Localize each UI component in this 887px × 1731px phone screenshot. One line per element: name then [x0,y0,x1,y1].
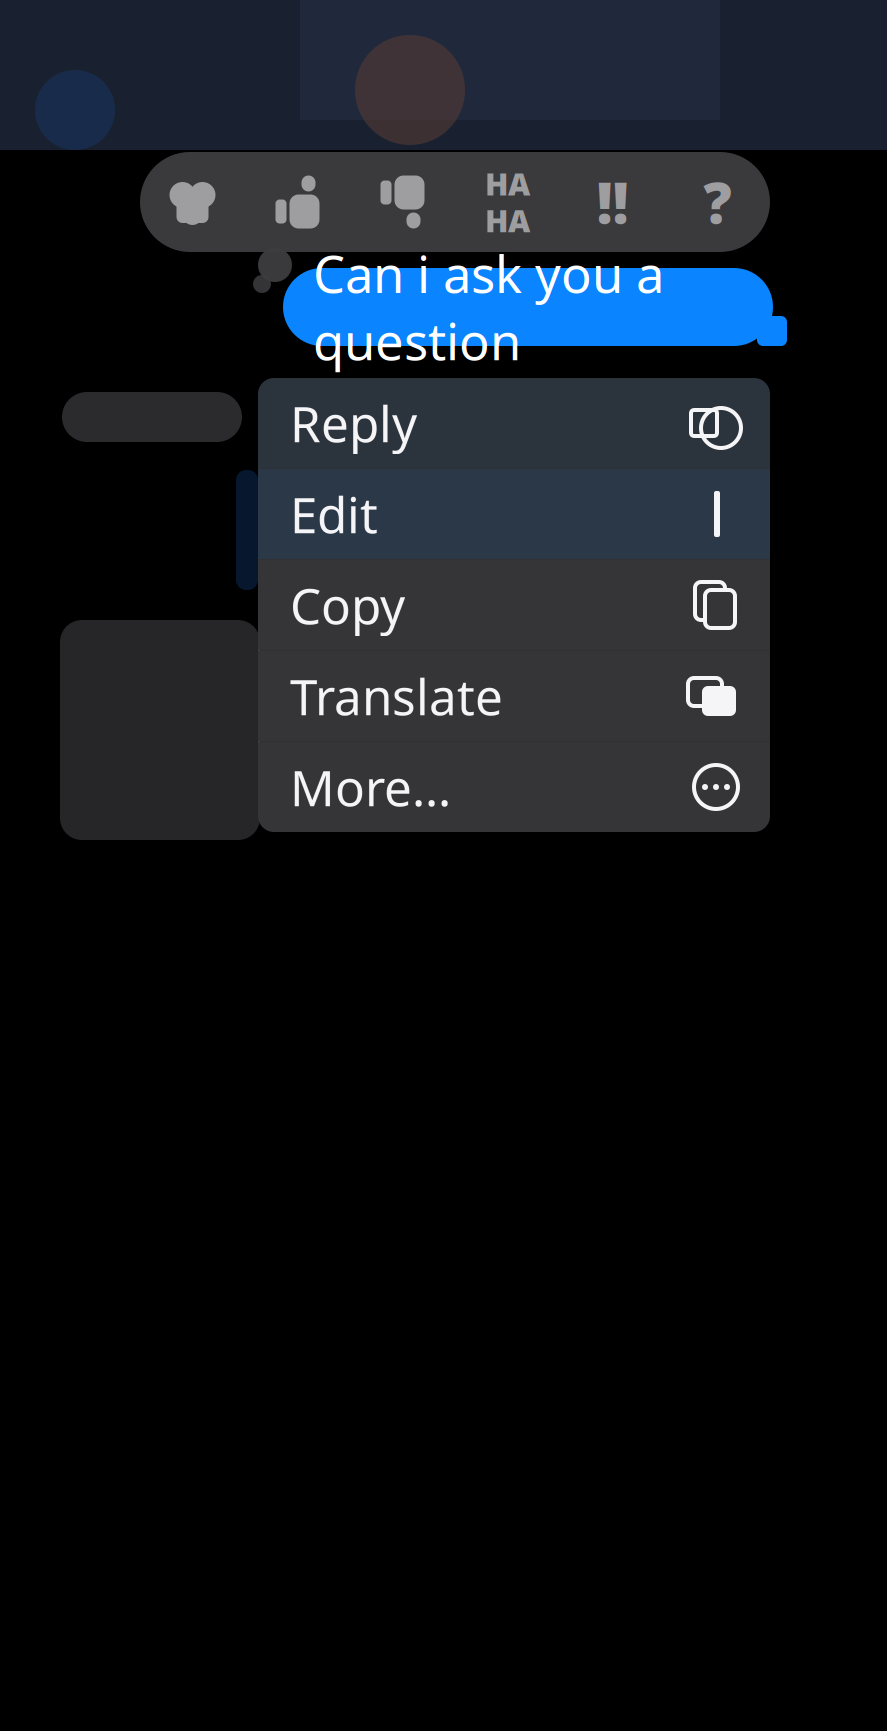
button[interactable]: Reply [258,378,770,468]
staticText: !! [596,165,628,239]
button[interactable]: More... [258,742,770,832]
staticText: Translate [290,663,503,729]
staticText: HA [485,200,530,241]
button[interactable]: Edit [258,469,770,559]
button[interactable]: Love [140,152,245,252]
button[interactable]: Like [245,152,350,252]
button[interactable]: Dislike [350,152,455,252]
staticText: HA [485,163,530,204]
staticText: ? [703,165,731,239]
button[interactable]: Copy [258,560,770,650]
staticText: Reply [290,390,417,456]
button[interactable]: Haha [455,152,560,252]
staticText: Edit [290,481,378,547]
button[interactable]: Translate [258,651,770,741]
button[interactable]: Exclamation [560,152,665,252]
staticText: More... [290,754,451,820]
button[interactable]: Question [665,152,770,252]
staticText: Copy [290,572,405,638]
staticText: Can i ask you a question [313,240,664,374]
